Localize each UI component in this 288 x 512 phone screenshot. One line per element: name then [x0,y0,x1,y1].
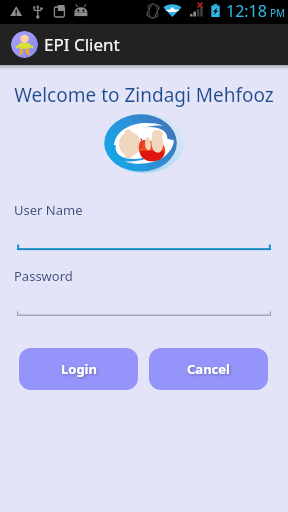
staticText: 12:18 [226,0,267,20]
staticText: Login [61,360,97,378]
staticText: User Name [14,201,83,219]
other: App icon [11,31,38,58]
button[interactable]: Cancel [149,348,268,390]
staticText: Password [14,267,73,285]
staticText: EPI Client [44,33,120,56]
staticText: PM [270,6,286,20]
staticText: Welcome to Zindagi Mehfooz [0,82,288,108]
button[interactable]: Login [19,348,138,390]
staticText: Cancel [187,360,230,378]
